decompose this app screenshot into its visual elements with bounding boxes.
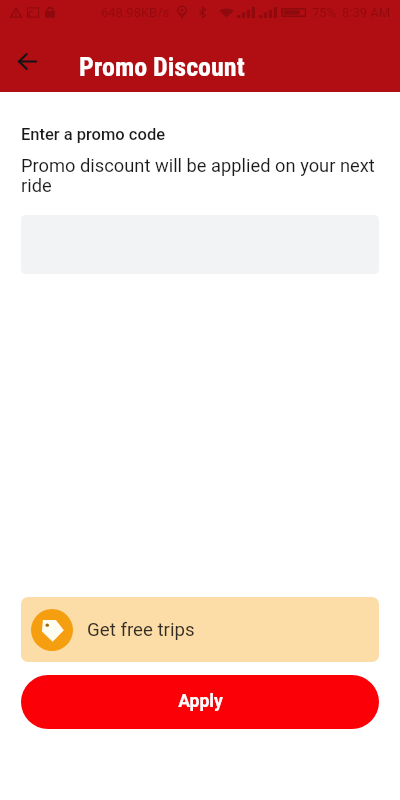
staticText: Promo Discount	[79, 52, 245, 82]
staticText: 648.98KB/s	[101, 5, 170, 20]
staticText: Promo discount will be applied on your n…	[21, 155, 384, 196]
staticText: 75%	[312, 5, 337, 20]
button[interactable]: Back	[5, 39, 50, 84]
staticText: Apply	[178, 691, 223, 712]
button[interactable]: Get free trips	[21, 597, 379, 662]
staticText: 8:39 AM	[342, 5, 391, 20]
staticText: Enter a promo code	[21, 125, 166, 144]
button[interactable]: Apply	[21, 675, 379, 729]
staticText: Get free trips	[87, 619, 195, 641]
